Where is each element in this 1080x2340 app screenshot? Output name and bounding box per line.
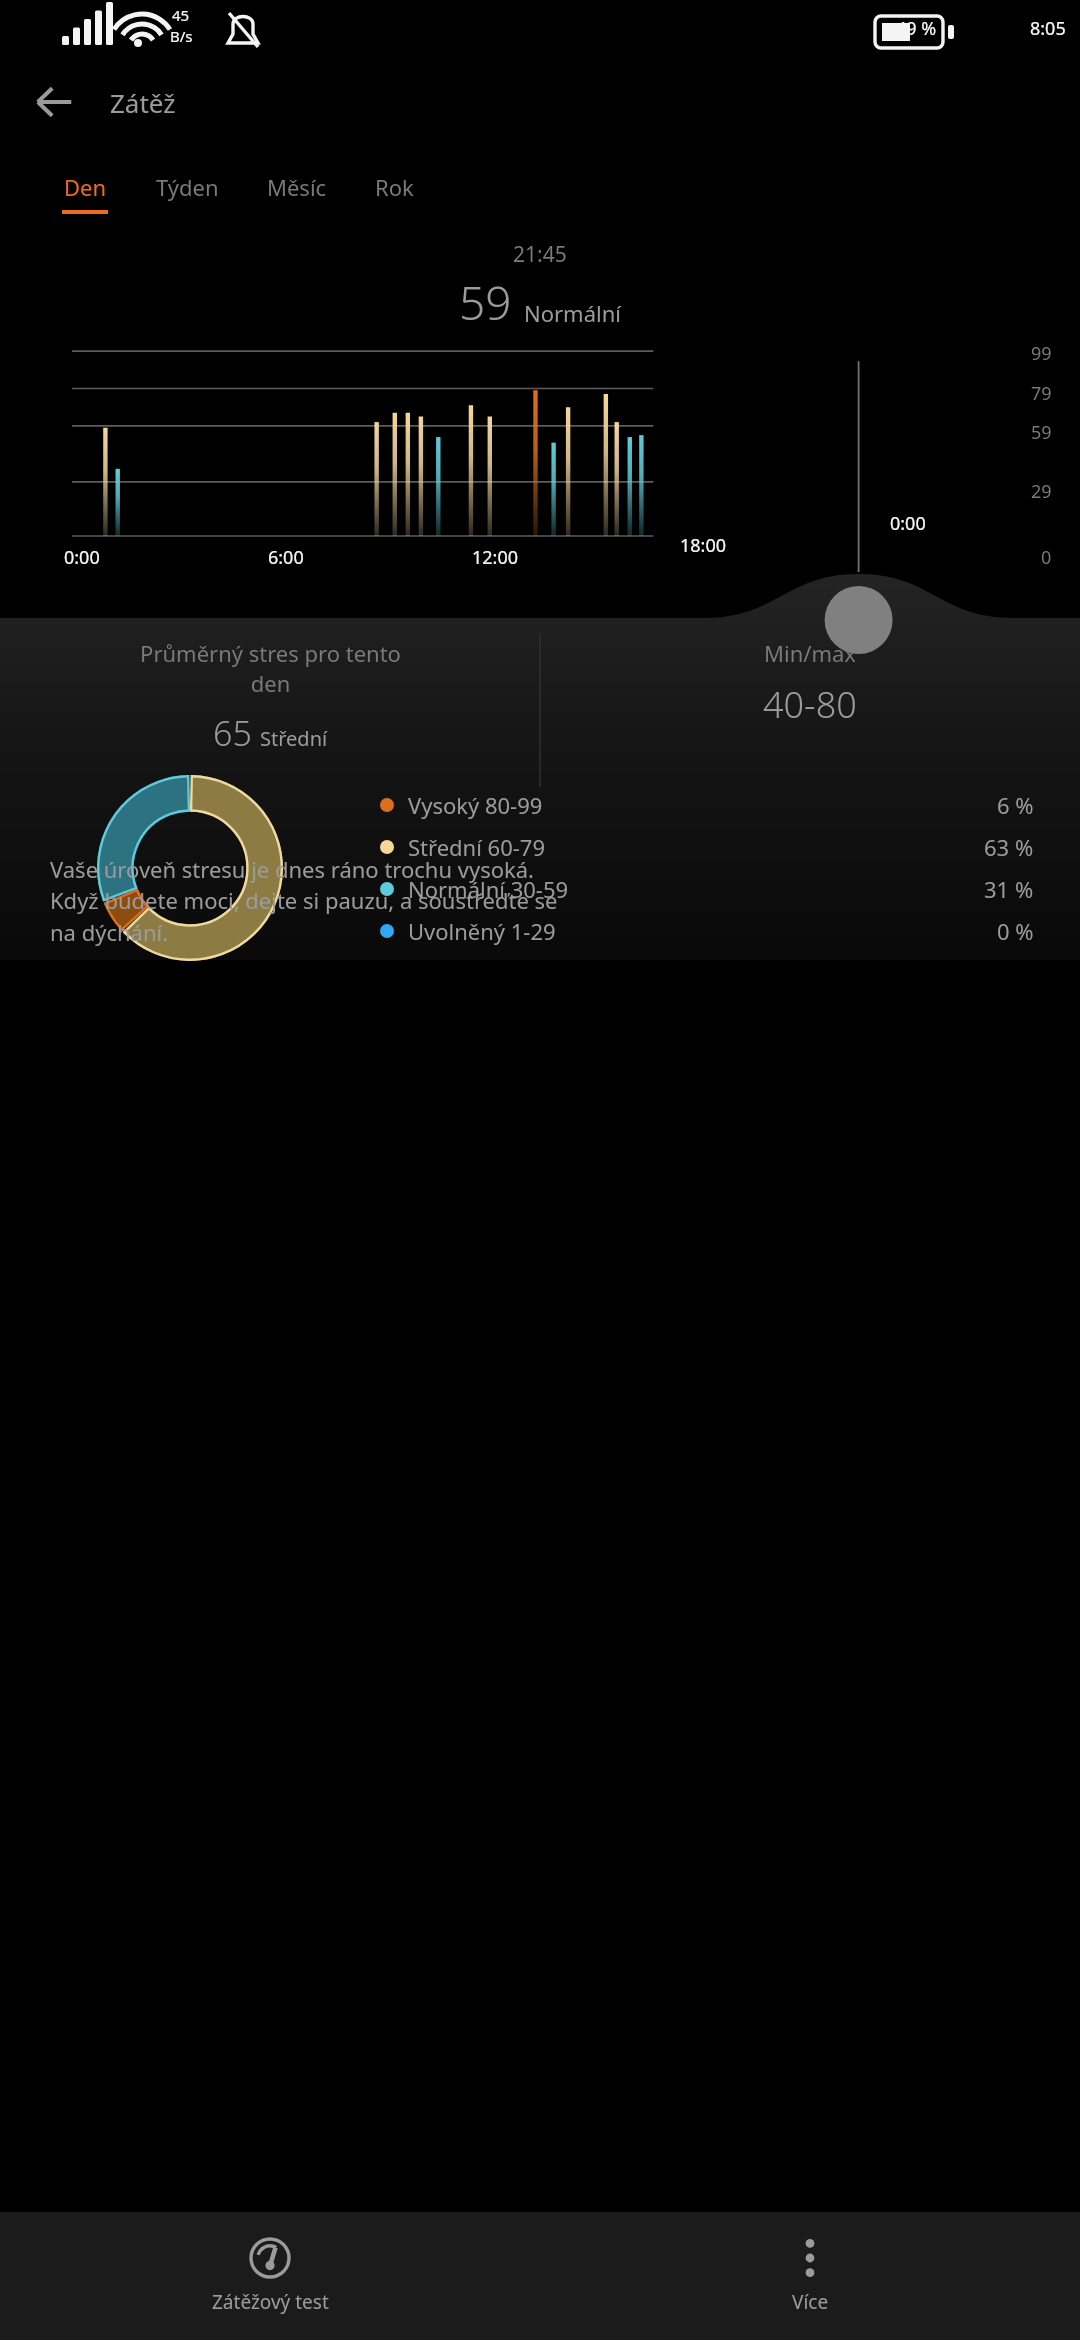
staticText: 12:00 [472,545,519,570]
button[interactable]: Týden [142,168,233,218]
staticText: Zátěžový test [212,2289,329,2315]
staticText: 65 [213,710,252,756]
staticText: B/s [170,26,193,46]
staticText: Více [792,2289,829,2315]
button[interactable]: Rok [361,168,428,218]
staticText: 59 [1031,420,1052,445]
button[interactable]: Střední 60-79 [380,830,1034,864]
staticText: 63 % [984,832,1034,862]
staticText: Vysoký 80-99 [408,790,997,820]
button[interactable]: Měsíc [253,168,341,218]
staticText: 59 [459,271,512,334]
staticText: Střední [260,725,328,752]
button[interactable]: Zátěžový test [0,2212,540,2340]
staticText: 45 [172,5,190,25]
button[interactable]: Back [22,70,86,134]
staticText: Den [64,172,107,202]
staticText: Střední 60-79 [408,832,984,862]
staticText: 6:00 [268,545,304,570]
button[interactable]: Uvolněný 1-29 [380,914,1034,948]
staticText: 6 % [997,790,1034,820]
button[interactable]: Normální 30-59 [380,872,1034,906]
button[interactable]: Vysoký 80-99 [380,788,1034,822]
staticText: Zátěž [110,85,176,120]
staticText: 8:05 [1030,16,1066,41]
button[interactable]: Více [540,2212,1080,2340]
staticText: Normální [524,298,621,328]
staticText: 0 [1041,545,1052,570]
staticText: Normální 30-59 [408,874,984,904]
staticText: Týden [156,172,219,202]
staticText: 0:00 [890,511,926,536]
staticText: 0:00 [64,545,100,570]
staticText: Min/max [764,638,856,668]
staticText: 29 [1031,479,1052,504]
staticText: 21:45 [513,240,567,269]
button[interactable]: Den [48,168,122,218]
staticText: Měsíc [267,172,327,202]
staticText: 99 [1031,341,1052,366]
staticText: 49 % [896,16,937,41]
staticText: 31 % [984,874,1034,904]
staticText: 40-80 [763,680,857,729]
staticText: 18:00 [680,533,727,558]
staticText: Uvolněný 1-29 [408,916,997,946]
staticText: Vaše úroveň stresu je dnes ráno trochu v… [50,854,558,948]
staticText: 0 % [997,916,1034,946]
staticText: Rok [375,172,414,202]
staticText: 79 [1031,381,1052,406]
staticText: Průměrný stres pro tento den [140,638,401,698]
